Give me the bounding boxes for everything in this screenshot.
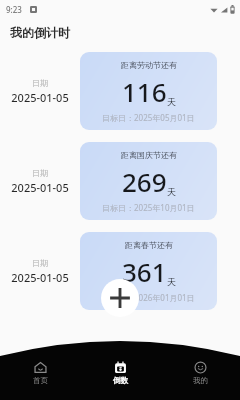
button[interactable]: 首页: [0, 360, 80, 386]
staticText: 我的倒计时: [10, 25, 70, 40]
staticText: 2025-01-05: [11, 180, 69, 195]
staticText: 日期: [32, 78, 48, 88]
button[interactable]: 距离国庆节还有: [80, 142, 217, 220]
button[interactable]: Add countdown: [101, 279, 139, 317]
button[interactable]: 距离劳动节还有: [80, 52, 217, 130]
staticText: 日期: [32, 168, 48, 178]
staticText: 倒数: [113, 376, 128, 385]
staticText: 距离春节还有: [125, 240, 173, 250]
staticText: 9:23: [6, 4, 22, 15]
staticText: 首页: [33, 376, 48, 385]
staticText: 天: [167, 186, 176, 197]
staticText: 天: [167, 96, 176, 107]
staticText: 距离国庆节还有: [121, 150, 177, 160]
button[interactable]: 我的: [160, 360, 240, 386]
staticText: 目标日：2025年05月01日: [102, 112, 195, 123]
button[interactable]: 距离春节还有: [80, 232, 217, 310]
button[interactable]: 倒数: [80, 360, 160, 386]
staticText: 日期: [32, 258, 48, 268]
staticText: 距离劳动节还有: [121, 60, 177, 70]
staticText: 天: [167, 276, 176, 287]
staticText: 361: [122, 254, 167, 289]
staticText: 目标日：2025年10月01日: [102, 202, 195, 213]
staticText: 2025-01-05: [11, 90, 69, 105]
staticText: 我的: [193, 376, 208, 385]
staticText: 116: [122, 74, 167, 109]
staticText: 目标日：2026年01月01日: [102, 292, 195, 303]
staticText: 2025-01-05: [11, 270, 69, 285]
staticText: 269: [122, 164, 167, 199]
